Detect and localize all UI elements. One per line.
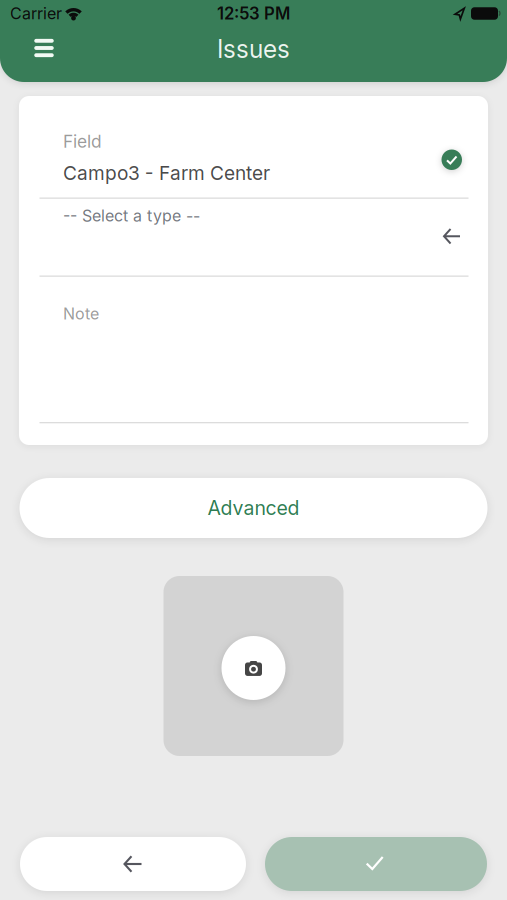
- staticText: Campo3 - Farm Center: [63, 161, 270, 185]
- button[interactable]: Save: [265, 837, 487, 891]
- button[interactable]: Add photo: [163, 576, 343, 756]
- button[interactable]: Menu: [34, 40, 54, 58]
- staticText: Issues: [217, 34, 290, 64]
- staticText: -- Select a type --: [63, 206, 200, 225]
- button[interactable]: Back: [19, 96, 35, 110]
- staticText: Field: [63, 131, 102, 152]
- button[interactable]: Back: [20, 837, 246, 891]
- staticText: Note: [63, 304, 99, 323]
- staticText: Carrier: [10, 4, 62, 23]
- button[interactable]: Advanced: [19, 478, 487, 538]
- staticText: 12:53 PM: [217, 3, 290, 24]
- staticText: Advanced: [207, 496, 299, 520]
